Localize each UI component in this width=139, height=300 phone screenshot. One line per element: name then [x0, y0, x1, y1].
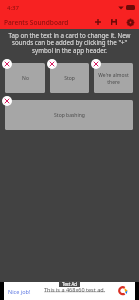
staticText: 4:37: [7, 4, 19, 12]
button[interactable]: Stop bashing: [5, 100, 133, 130]
staticText: We're almost there: [96, 72, 131, 85]
button[interactable]: Delete sound: [91, 59, 101, 69]
button[interactable]: Delete sound: [2, 59, 12, 69]
staticText: Stop bashing: [54, 112, 85, 119]
button[interactable]: Delete sound: [2, 96, 12, 106]
staticText: Parents Soundboard: [4, 18, 69, 27]
button[interactable]: No: [5, 63, 45, 93]
button[interactable]: Stop: [50, 63, 89, 93]
button[interactable]: Nice job!: [4, 282, 135, 300]
button[interactable]: We're almost there: [94, 63, 133, 93]
button[interactable]: Delete sound: [47, 59, 57, 69]
staticText: Stop: [64, 75, 75, 82]
staticText: Nice job!: [8, 288, 31, 295]
staticText: Test Ad: [62, 281, 77, 287]
button[interactable]: Add sound: [91, 15, 105, 29]
staticText: This is a 468x60 test ad.: [44, 286, 106, 293]
staticText: Tap on the text in a card to change it. …: [6, 31, 133, 55]
staticText: No: [22, 75, 29, 82]
button[interactable]: Save: [105, 15, 122, 29]
button[interactable]: Settings: [122, 15, 139, 29]
